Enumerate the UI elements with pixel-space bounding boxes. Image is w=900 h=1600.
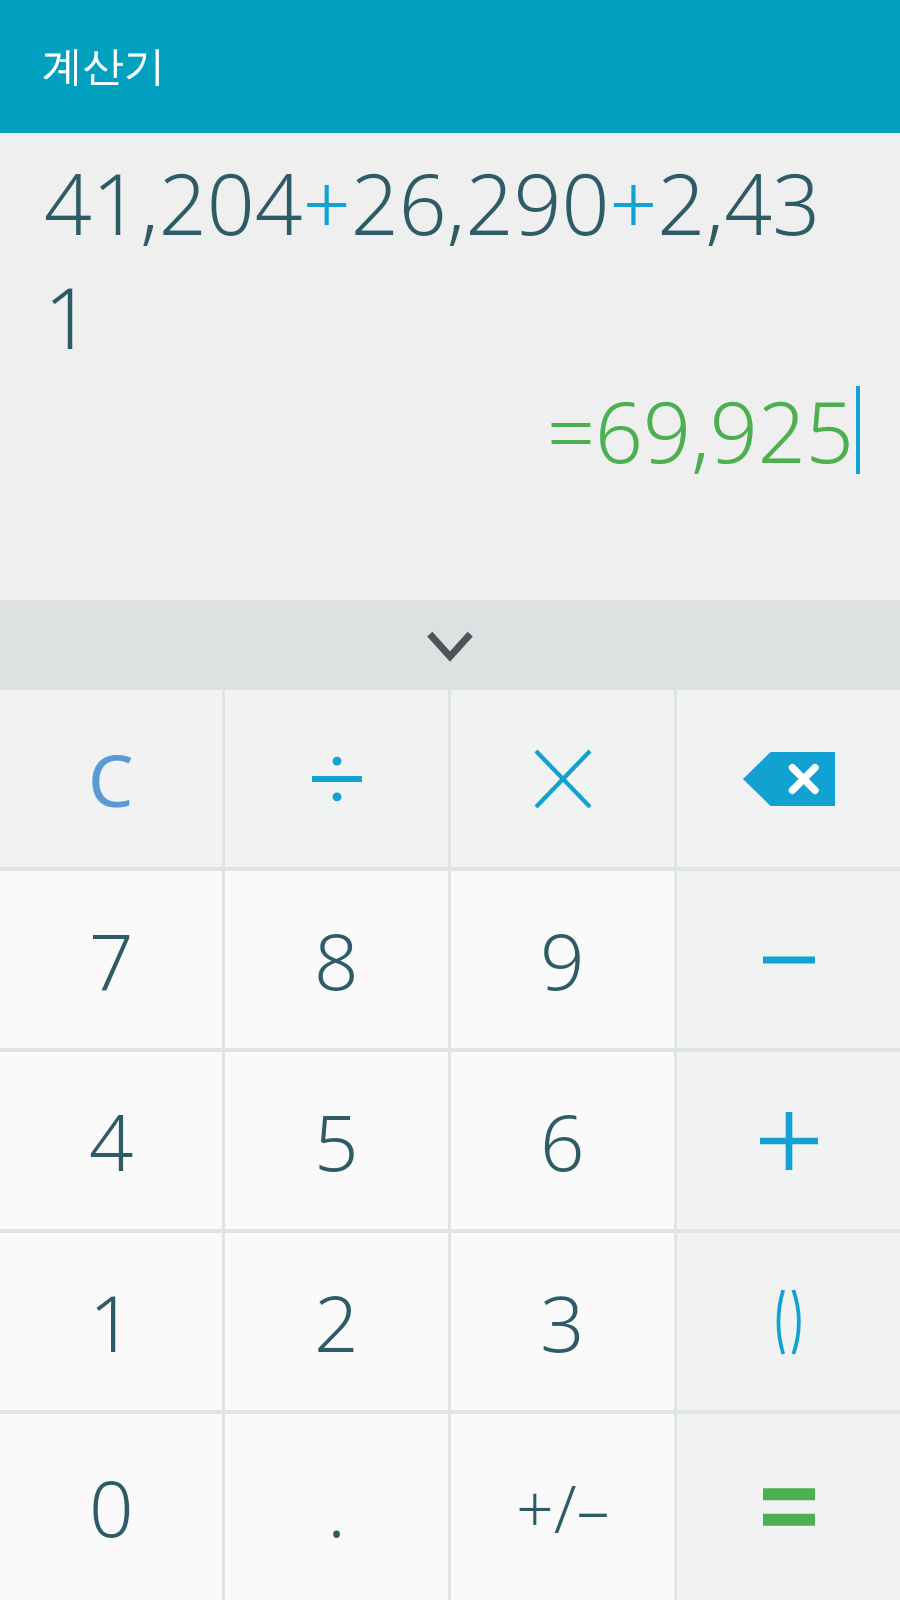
staticText: 3 — [540, 1269, 585, 1375]
button[interactable]: 1 — [0, 1233, 222, 1410]
button[interactable]: 6 — [451, 1052, 674, 1229]
button[interactable]: Clear — [0, 690, 222, 867]
button[interactable]: Divide — [225, 690, 448, 867]
button[interactable]: 3 — [451, 1233, 674, 1410]
staticText: 41,204+26,290+2,431 — [44, 145, 860, 373]
button[interactable]: Equals — [677, 1414, 900, 1600]
button[interactable]: 5 — [225, 1052, 448, 1229]
staticText: +/– — [516, 1462, 610, 1552]
staticText: 7 — [89, 907, 134, 1013]
button[interactable]: 0 — [0, 1414, 222, 1600]
button[interactable]: 9 — [451, 871, 674, 1048]
button[interactable]: 2 — [225, 1233, 448, 1410]
button[interactable]: 8 — [225, 871, 448, 1048]
staticText: 9 — [540, 907, 585, 1013]
button[interactable]: 7 — [0, 871, 222, 1048]
staticText: 0 — [89, 1454, 134, 1560]
button[interactable]: Sign change — [451, 1414, 674, 1600]
button[interactable]: 4 — [0, 1052, 222, 1229]
staticText: 2 — [314, 1269, 359, 1375]
staticText: 계산기 — [42, 41, 165, 93]
staticText: 1 — [89, 1269, 134, 1375]
staticText: . — [327, 1454, 347, 1560]
staticText: 6 — [540, 1088, 585, 1194]
staticText: 5 — [314, 1088, 359, 1194]
staticText: 8 — [314, 907, 359, 1013]
button[interactable]: Decimal point — [225, 1414, 448, 1600]
staticText: =69,925 — [547, 373, 854, 487]
button[interactable]: Collapse keypad — [0, 600, 900, 690]
staticText: C — [88, 730, 134, 828]
button[interactable]: Plus — [677, 1052, 900, 1229]
button[interactable]: Minus — [677, 871, 900, 1048]
button[interactable]: Parentheses — [677, 1233, 900, 1410]
staticText: 4 — [89, 1088, 134, 1194]
button[interactable]: Backspace — [677, 690, 900, 867]
button[interactable]: Multiply — [451, 690, 674, 867]
